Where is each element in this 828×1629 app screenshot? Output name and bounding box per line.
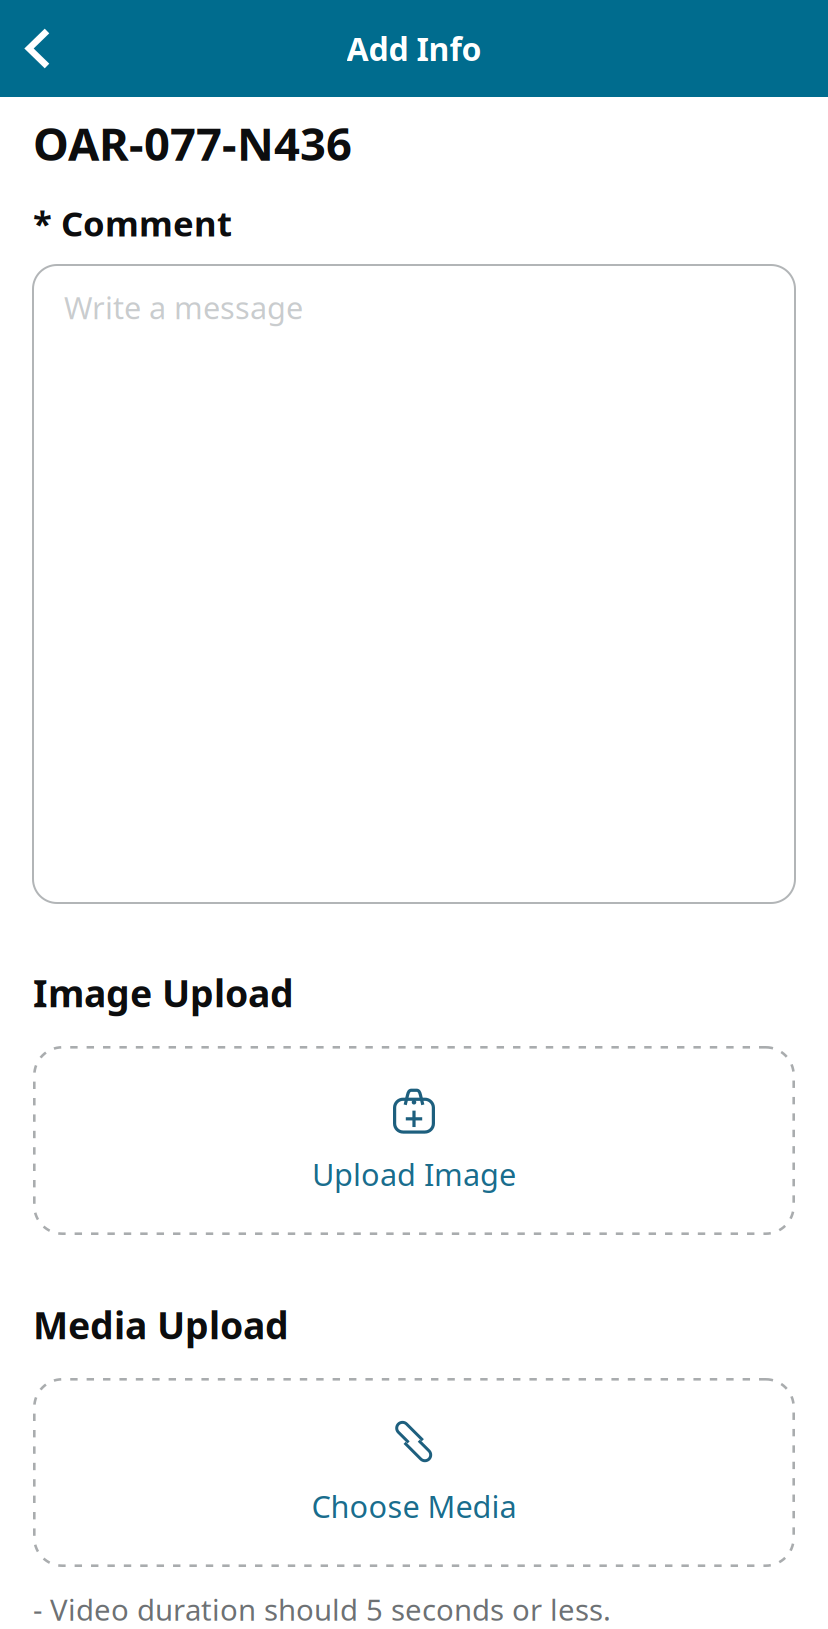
staticText: Choose Media bbox=[311, 1486, 516, 1526]
button[interactable]: Choose Media bbox=[33, 1378, 795, 1567]
staticText: * Comment bbox=[33, 200, 232, 246]
staticText: Write a message bbox=[64, 287, 303, 328]
staticText: Add Info bbox=[346, 27, 481, 70]
staticText: OAR-077-N436 bbox=[33, 113, 352, 173]
staticText: - Video duration should 5 seconds or les… bbox=[33, 1590, 611, 1629]
button[interactable]: Back bbox=[0, 0, 76, 97]
staticText: Image Upload bbox=[33, 968, 294, 1018]
staticText: Media Upload bbox=[33, 1300, 289, 1350]
staticText: Upload Image bbox=[312, 1154, 516, 1194]
button[interactable]: Upload Image bbox=[33, 1046, 795, 1235]
